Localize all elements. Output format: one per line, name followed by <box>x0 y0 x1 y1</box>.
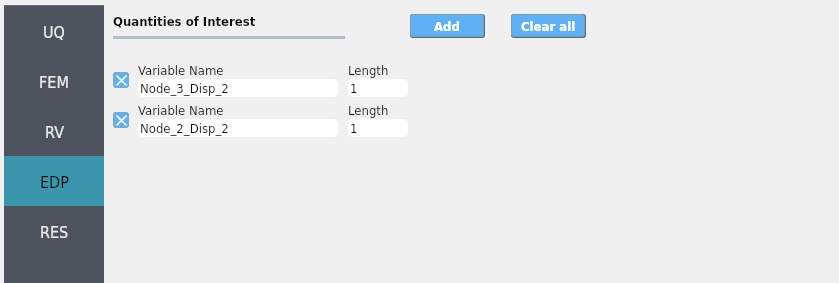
button[interactable]: 1 <box>348 119 408 137</box>
button[interactable]: 1 <box>348 79 408 97</box>
button[interactable]: EDP <box>4 156 104 206</box>
staticText: 1 <box>350 121 358 136</box>
staticText: Node_3_Disp_2 <box>140 81 229 96</box>
staticText: Variable Name <box>138 103 224 118</box>
button[interactable]: Remove variable <box>114 113 128 127</box>
button[interactable]: Node_2_Disp_2 <box>138 119 338 137</box>
staticText: Clear all <box>521 19 576 34</box>
staticText: 1 <box>350 81 358 96</box>
button[interactable]: Clear all <box>512 15 584 36</box>
staticText: EDP <box>40 173 69 192</box>
staticText: Quantities of Interest <box>113 14 256 29</box>
staticText: RES <box>40 223 69 242</box>
staticText: Node_2_Disp_2 <box>140 121 229 136</box>
button[interactable]: Add <box>411 15 483 36</box>
staticText: FEM <box>39 73 69 92</box>
staticText: Length <box>348 63 389 78</box>
staticText: Add <box>434 19 460 34</box>
staticText: Length <box>348 103 389 118</box>
staticText: UQ <box>43 23 65 42</box>
staticText: Variable Name <box>138 63 224 78</box>
button[interactable]: FEM <box>4 56 104 106</box>
button[interactable]: RES <box>4 206 104 256</box>
staticText: RV <box>45 123 64 142</box>
button[interactable]: Remove variable <box>114 73 128 87</box>
button[interactable]: Node_3_Disp_2 <box>138 79 338 97</box>
button[interactable]: RV <box>4 106 104 156</box>
button[interactable]: UQ <box>4 6 104 56</box>
